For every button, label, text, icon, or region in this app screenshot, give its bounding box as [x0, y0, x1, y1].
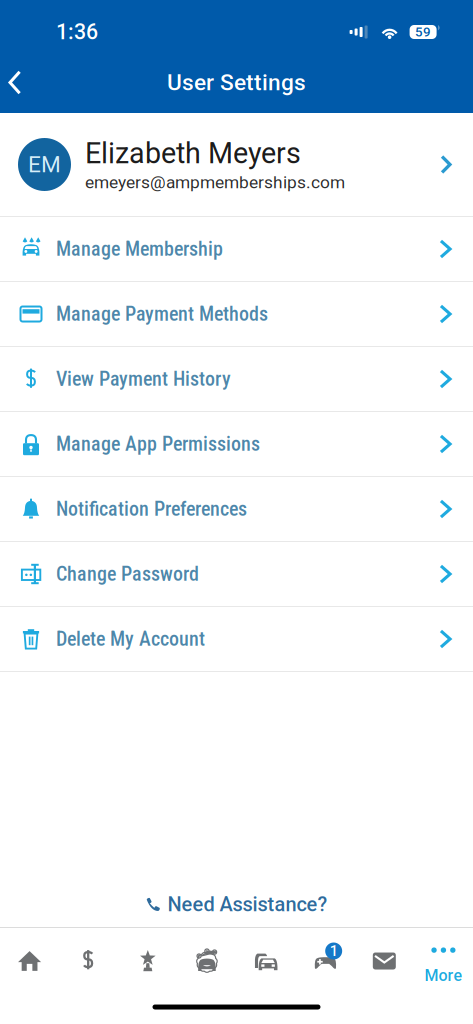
staticText: Change Password — [56, 562, 199, 586]
staticText: Notification Preferences — [56, 497, 247, 521]
button[interactable]: Manage Payment Methods — [0, 282, 473, 347]
staticText: 1:36 — [56, 19, 98, 44]
button[interactable]: Games — [296, 928, 355, 990]
staticText: Need Assistance? — [167, 893, 327, 916]
button[interactable]: Car Wash — [177, 928, 236, 990]
button[interactable]: Change Password — [0, 542, 473, 607]
staticText: Delete My Account — [56, 627, 205, 651]
staticText: Elizabeth Meyers — [85, 136, 301, 170]
staticText: 1 — [330, 942, 338, 960]
button[interactable]: EM — [0, 113, 473, 217]
button[interactable]: Payments — [59, 928, 118, 990]
button[interactable]: Home — [0, 928, 59, 990]
staticText: User Settings — [167, 69, 306, 96]
staticText: 59 — [415, 24, 431, 40]
staticText: View Payment History — [56, 367, 231, 391]
button[interactable]: Back — [0, 60, 50, 104]
button[interactable]: Manage Membership — [0, 217, 473, 282]
staticText: EM — [28, 151, 61, 178]
staticText: emeyers@ampmemberships.com — [85, 172, 345, 192]
button[interactable]: Manage App Permissions — [0, 412, 473, 477]
staticText: More — [424, 966, 462, 985]
staticText: Manage Membership — [56, 237, 223, 261]
button[interactable]: Rewards — [118, 928, 177, 990]
staticText: Manage App Permissions — [56, 432, 260, 456]
button[interactable]: More — [414, 928, 473, 990]
button[interactable]: Need Assistance? — [0, 884, 473, 927]
button[interactable]: Delete My Account — [0, 607, 473, 672]
button[interactable]: View Payment History — [0, 347, 473, 412]
button[interactable]: Messages — [355, 928, 414, 990]
button[interactable]: My Vehicles — [236, 928, 296, 990]
button[interactable]: Notification Preferences — [0, 477, 473, 542]
staticText: Manage Payment Methods — [56, 302, 268, 326]
